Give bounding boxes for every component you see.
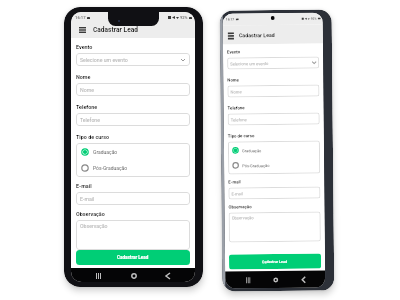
button[interactable]: Observação — [229, 212, 321, 242]
button[interactable]: Telefone — [228, 113, 320, 125]
staticText: Telefone — [228, 105, 246, 110]
staticText: Telefone — [76, 104, 98, 110]
staticText: E-mail — [231, 191, 243, 196]
button[interactable]: Pós-Graduação — [232, 161, 316, 169]
staticText: Cadastrar Lead — [93, 26, 138, 34]
staticText: Selecione um evento — [80, 57, 128, 63]
button[interactable]: E-mail — [228, 187, 320, 199]
staticText: Tipo de curso — [76, 134, 110, 140]
button[interactable]: Home — [270, 273, 280, 286]
staticText: Evento — [76, 44, 93, 50]
staticText: Observação — [80, 223, 108, 229]
button[interactable]: Back — [298, 273, 308, 286]
button[interactable]: Selecione um evento — [227, 57, 319, 69]
staticText: Nome — [227, 77, 239, 82]
staticText: Graduação — [242, 148, 262, 153]
button[interactable]: Nome — [76, 83, 190, 96]
staticText: E-mail — [80, 196, 95, 202]
staticText: Observação — [76, 211, 105, 217]
button[interactable]: Observação — [76, 220, 190, 250]
staticText: Pós-Graduação — [242, 163, 270, 168]
staticText: 92% — [180, 15, 188, 20]
staticText: Graduação — [93, 149, 118, 155]
staticText: Pós-Graduação — [93, 165, 128, 171]
button[interactable]: Telefone — [76, 113, 190, 126]
staticText: Evento — [227, 49, 241, 54]
button[interactable]: Nome — [227, 85, 319, 97]
button[interactable]: E-mail — [76, 192, 190, 205]
staticText: E-mail — [228, 179, 241, 184]
button[interactable]: Home — [127, 269, 140, 282]
button[interactable]: Cadastrar Lead — [229, 254, 321, 269]
staticText: Observação — [228, 204, 252, 209]
staticText: Tipo de curso — [228, 133, 255, 138]
button[interactable]: Open navigation menu — [227, 29, 235, 41]
staticText: 16:17 — [226, 17, 235, 21]
staticText: Nome — [76, 74, 91, 80]
button[interactable]: Pós-Graduação — [81, 164, 185, 172]
staticText: Cadastrar Lead — [117, 255, 149, 260]
button[interactable]: Open navigation menu — [77, 25, 87, 35]
staticText: 92% — [311, 17, 317, 21]
staticText: Nome — [230, 89, 242, 94]
button[interactable]: Recent apps — [92, 269, 105, 282]
button[interactable]: Graduação — [81, 148, 185, 156]
button[interactable]: Back — [161, 269, 174, 282]
staticText: 16:17 — [75, 15, 86, 20]
staticText: Selecione um evento — [230, 61, 269, 66]
staticText: Cadastrar Lead — [262, 260, 288, 264]
button[interactable]: Graduação — [232, 146, 316, 154]
button[interactable]: Recent apps — [243, 273, 253, 286]
staticText: E-mail — [76, 183, 92, 189]
button[interactable]: Cadastrar Lead — [76, 250, 190, 265]
staticText: Cadastrar Lead — [239, 32, 275, 38]
button[interactable]: Selecione um evento — [76, 53, 190, 66]
staticText: Observação — [232, 215, 255, 220]
staticText: Telefone — [231, 117, 248, 122]
staticText: Telefone — [80, 117, 100, 123]
staticText: Nome — [80, 87, 94, 93]
